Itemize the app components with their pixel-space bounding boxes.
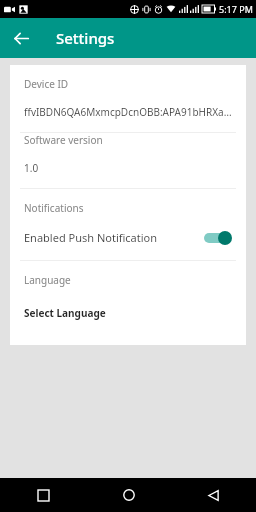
staticText: ffvIBDN6QA6MxmcpDcnOBB:APA91bHRXae… xyxy=(24,105,232,119)
staticText: Language xyxy=(24,273,71,287)
button[interactable]: Enabled Push Notification xyxy=(10,224,246,251)
staticText: Notifications xyxy=(24,201,84,215)
staticText: Enabled Push Notification xyxy=(24,230,204,245)
button[interactable]: Device ID xyxy=(10,77,246,132)
staticText: 1.0 xyxy=(24,161,39,175)
button[interactable]: Enabled Push Notification toggle xyxy=(204,231,232,245)
staticText: 5:17 PM xyxy=(219,3,253,15)
button[interactable]: Home xyxy=(86,478,171,512)
staticText: Software version xyxy=(24,133,103,147)
staticText: Settings xyxy=(56,28,115,48)
button[interactable]: Back xyxy=(6,23,36,53)
staticText: Select Language xyxy=(24,306,106,320)
staticText: Device ID xyxy=(24,77,69,91)
button[interactable]: Recents xyxy=(0,478,86,512)
button[interactable]: Software version xyxy=(10,133,246,188)
button[interactable]: Select Language xyxy=(10,303,246,323)
button[interactable]: Back xyxy=(171,478,256,512)
